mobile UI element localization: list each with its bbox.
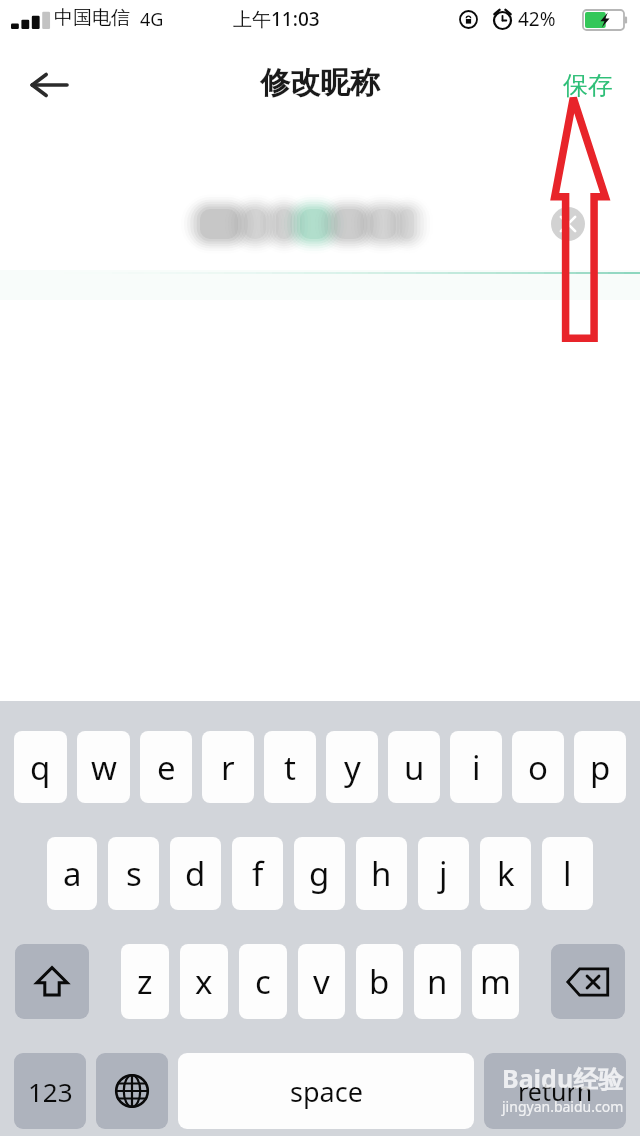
button[interactable]: b [356, 944, 403, 1019]
staticText: d [185, 851, 206, 896]
staticText: r [221, 745, 235, 790]
staticText: n [427, 959, 448, 1004]
staticText: return [518, 1074, 593, 1108]
button[interactable]: w [77, 731, 130, 803]
staticText: 4G [140, 7, 164, 32]
button[interactable]: r [202, 731, 254, 803]
button[interactable]: q [14, 731, 67, 803]
staticText: 中国电信 [54, 6, 130, 30]
staticText: f [252, 851, 264, 896]
button[interactable]: d [170, 837, 221, 910]
button[interactable]: Backspace [551, 944, 625, 1019]
staticText: w [91, 745, 117, 790]
staticText: v [313, 959, 330, 1004]
button[interactable]: f [232, 837, 283, 910]
staticText: 保存 [563, 70, 613, 101]
button[interactable]: 保存 [546, 48, 630, 122]
button[interactable]: i [450, 731, 502, 803]
staticText: y [344, 745, 361, 790]
staticText: z [137, 959, 153, 1004]
button[interactable]: y [326, 731, 378, 803]
button[interactable]: h [356, 837, 407, 910]
staticText: j [439, 851, 448, 896]
staticText: x [195, 959, 213, 1004]
button[interactable]: v [298, 944, 345, 1019]
button[interactable]: g [294, 837, 345, 910]
button[interactable]: x [180, 944, 228, 1019]
staticText: c [255, 959, 271, 1004]
staticText: k [497, 851, 515, 896]
staticText: jingyan.baidu.com [502, 1097, 624, 1116]
button[interactable]: o [512, 731, 564, 803]
staticText: 上午11:03 [233, 6, 320, 32]
button[interactable]: k [480, 837, 531, 910]
button[interactable]: Shift [15, 944, 89, 1019]
button[interactable]: e [140, 731, 192, 803]
staticText: space [290, 1073, 363, 1110]
button[interactable]: Clear text [551, 207, 585, 241]
button[interactable]: s [108, 837, 159, 910]
button[interactable]: Switch keyboard [96, 1053, 168, 1129]
button[interactable]: m [472, 944, 519, 1019]
staticText: l [563, 851, 572, 896]
button[interactable]: n [414, 944, 461, 1019]
button[interactable]: a [47, 837, 97, 910]
button[interactable]: t [264, 731, 316, 803]
staticText: t [284, 745, 296, 790]
staticText: 修改昵称 [260, 64, 380, 102]
staticText: e [157, 745, 176, 790]
staticText: b [369, 959, 390, 1004]
staticText: o [528, 745, 548, 790]
button[interactable]: return [484, 1053, 626, 1129]
button[interactable]: z [121, 944, 169, 1019]
button[interactable]: Back [16, 48, 82, 122]
staticText: s [126, 851, 142, 896]
button[interactable]: c [239, 944, 287, 1019]
staticText: a [63, 851, 82, 896]
staticText: i [472, 745, 481, 790]
button[interactable]: space [178, 1053, 474, 1129]
staticText: u [404, 745, 425, 790]
button[interactable]: 123 [14, 1053, 86, 1129]
button[interactable]: j [418, 837, 469, 910]
button[interactable]: p [574, 731, 626, 803]
staticText: q [30, 745, 51, 790]
staticText: p [590, 745, 611, 790]
staticText: g [309, 851, 330, 896]
button[interactable]: u [388, 731, 440, 803]
staticText: 123 [28, 1074, 73, 1109]
staticText: h [371, 851, 392, 896]
button[interactable]: l [542, 837, 593, 910]
staticText: 42% [518, 6, 556, 32]
staticText: m [480, 959, 511, 1004]
staticText: Baidu经验 [502, 1061, 624, 1095]
